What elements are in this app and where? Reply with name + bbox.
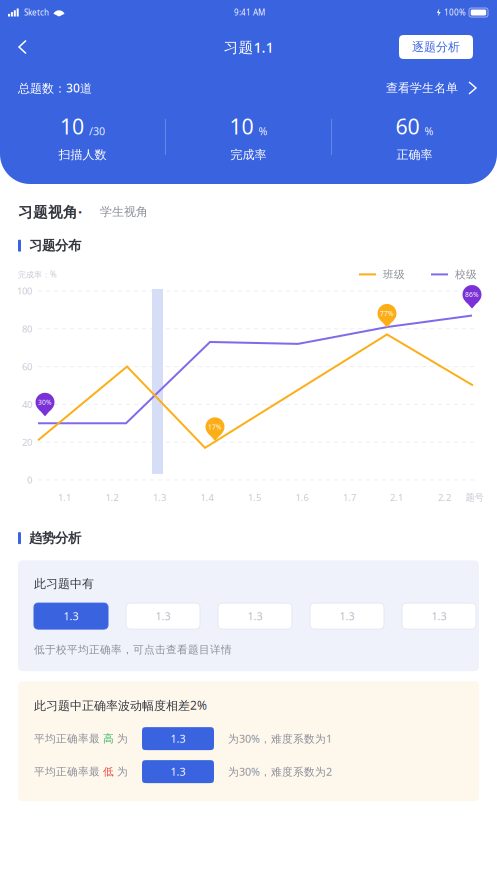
button[interactable]: 1.3 [126,603,200,629]
staticText: 正确率 [396,147,432,162]
staticText: 高 [103,732,114,745]
staticText: 9:41 AM [234,7,265,18]
staticText: /30 [89,124,105,138]
staticText: 1.2 [105,491,118,504]
staticText: 2.1 [390,491,403,504]
staticText: 班级 [383,268,405,281]
button[interactable]: 1.3 [34,603,108,629]
staticText: 1.3 [247,609,262,623]
staticText: 逐题分析 [412,40,460,54]
staticText: 完成率：% [18,269,57,280]
staticText: 80 [22,323,32,335]
button[interactable]: 习题视角· [18,202,82,221]
staticText: 为 [114,732,128,745]
staticText: 100 [17,285,32,297]
staticText: 为 [114,765,128,778]
button[interactable]: 学生视角 [100,204,148,219]
button[interactable]: 1.3 [402,603,476,629]
staticText: 校级 [455,268,477,281]
staticText: 100% [444,7,466,18]
staticText: 扫描人数 [58,147,106,162]
staticText: 1.1 [58,491,71,504]
staticText: 77% [380,309,394,318]
staticText: 1.3 [170,764,185,779]
staticText: 完成率 [230,147,266,162]
staticText: 1.3 [431,609,446,623]
staticText: 1.3 [155,609,170,623]
staticText: 习题视角· [18,202,82,221]
button[interactable]: 1.3 [142,760,214,783]
staticText: 17% [208,422,222,431]
staticText: 20 [22,436,32,448]
staticText: 1.3 [170,731,185,746]
staticText: 10 [229,112,253,140]
staticText: % [258,124,267,138]
staticText: 题号 [465,492,483,503]
staticText: 习题分布 [29,237,81,254]
staticText: 0 [27,474,32,486]
button[interactable]: 查看学生名单 [386,81,476,95]
button[interactable]: 1.3 [310,603,384,629]
staticText: % [424,124,433,138]
staticText: 30% [38,398,52,407]
staticText: 此习题中正确率波动幅度相差2% [34,697,207,713]
staticText: 1.5 [248,491,261,504]
staticText: 1.3 [63,609,78,623]
button[interactable]: 1.3 [142,727,214,750]
staticText: 学生视角 [100,204,148,219]
staticText: 1.3 [339,609,354,623]
staticText: 1.3 [153,491,166,504]
staticText: 10 [60,112,84,140]
button[interactable]: 逐题分析 [399,35,473,59]
staticText: 2.2 [438,491,451,504]
staticText: 低 [103,765,114,778]
staticText: 低于校平均正确率，可点击查看题目详情 [34,643,232,656]
staticText: 习题1.1 [223,37,273,57]
staticText: 平均正确率最 [34,765,103,778]
staticText: 趋势分析 [29,530,81,546]
staticText: 平均正确率最 [34,732,103,745]
staticText: 1.6 [295,491,308,504]
staticText: 86% [465,290,479,299]
staticText: 此习题中有 [34,576,94,591]
staticText: 查看学生名单 [386,81,458,95]
staticText: 1.7 [343,491,356,504]
staticText: 为30%，难度系数为2 [228,764,332,779]
staticText: 60 [22,360,32,373]
staticText: 为30%，难度系数为1 [228,731,332,746]
staticText: 总题数：30道 [18,80,92,96]
staticText: 60 [395,112,419,140]
button[interactable]: 1.3 [218,603,292,629]
staticText: 1.4 [200,491,213,504]
button[interactable]: 返回 [0,30,40,64]
staticText: Sketch [24,7,49,18]
staticText: 40 [22,398,32,411]
